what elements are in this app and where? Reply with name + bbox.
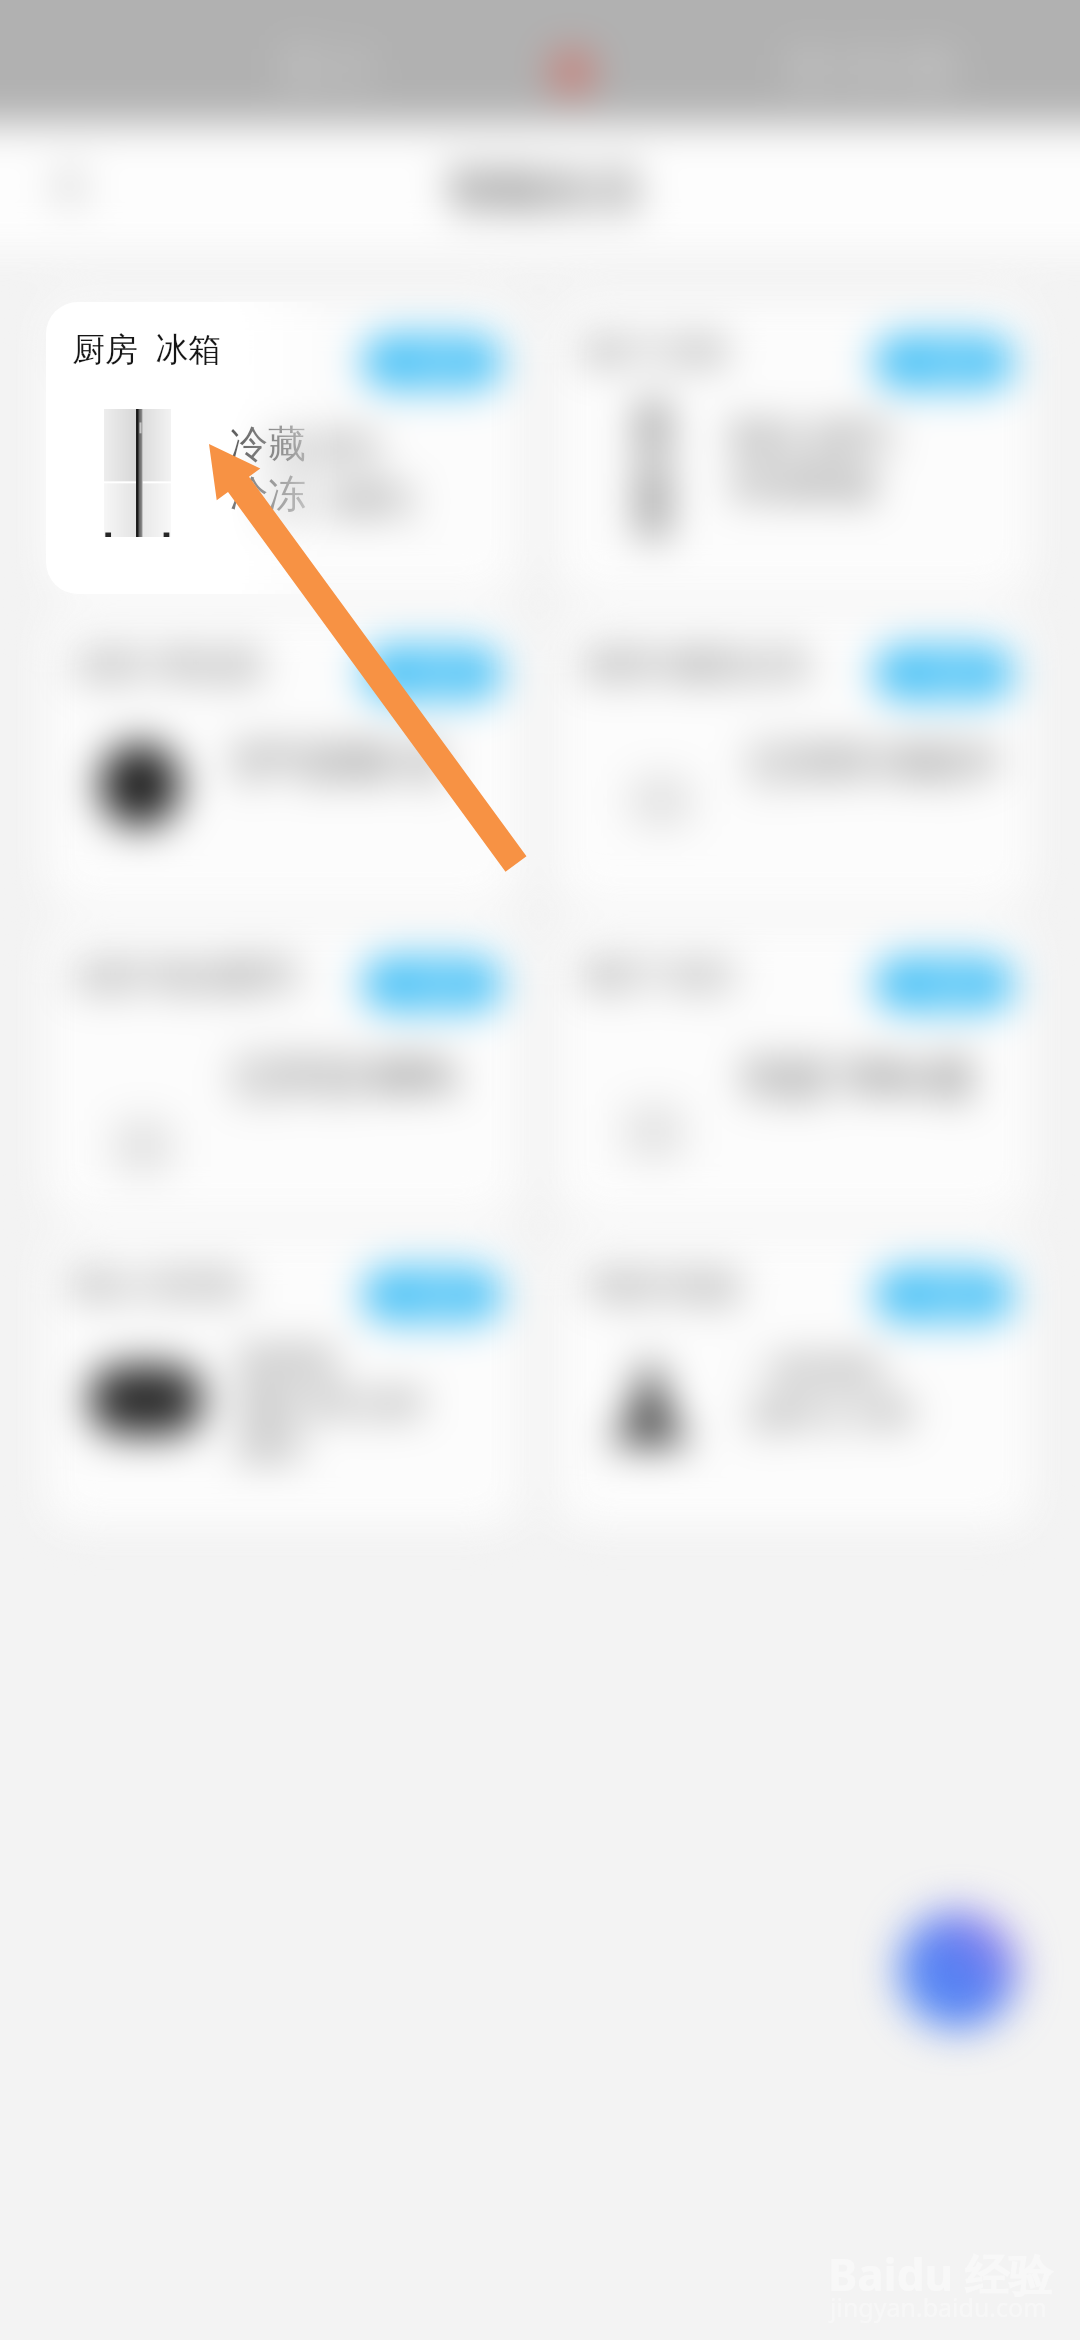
button[interactable]: 次卧 电动窗帘 <box>46 924 520 1216</box>
staticText: 阳台 洗衣机 <box>72 1261 246 1306</box>
button[interactable]: 客厅 吊灯 <box>558 924 1032 1216</box>
staticText: 冷冻 -18°C <box>232 474 414 526</box>
button[interactable]: 阳台 洗衣机 <box>46 1235 520 1527</box>
staticText: 已连接 <box>905 1279 983 1312</box>
staticText: 标准洗 <box>240 1341 336 1381</box>
staticText: 剩余 35 分钟 <box>240 1381 422 1425</box>
staticText: 已开启 80% <box>234 1046 455 1103</box>
staticText: 一档 摇头 <box>750 1347 887 1391</box>
button[interactable]: 已连接 <box>876 958 1012 1010</box>
button[interactable]: 厨房 冰箱 <box>46 302 346 594</box>
staticText: 厨房 冰箱 <box>72 328 213 373</box>
staticText: 冷冻 <box>230 470 306 518</box>
button[interactable]: 书房 风扇 <box>558 1235 1032 1527</box>
staticText: 客厅 吊灯 <box>584 950 738 999</box>
staticText: 已连接 <box>393 346 471 379</box>
staticText: 脱水 <box>240 1425 304 1465</box>
staticText: 定时 2 小时 <box>750 1391 913 1435</box>
staticText: 客厅 空调 <box>584 328 725 373</box>
button[interactable]: 厨房 烟机灶具 <box>558 613 1032 905</box>
staticText: 主卧 净化器 <box>72 639 262 688</box>
staticText: 亮度 70% 暖 <box>742 1048 974 1105</box>
staticText: 空气质量 优 <box>232 733 443 788</box>
staticText: 已连接 <box>393 968 471 1001</box>
staticText: 厨房 冰箱 <box>72 326 222 371</box>
staticText: 书房 风扇 <box>584 1261 738 1310</box>
staticText: 次卧 电动窗帘 <box>72 950 298 999</box>
staticText: 冷藏 5°C <box>232 422 380 474</box>
staticText: 冷藏 <box>230 420 306 468</box>
staticText: 已连接 <box>905 346 983 379</box>
button[interactable]: 厨房 冰箱 <box>46 302 520 594</box>
button[interactable]: 已连接 <box>876 647 1012 699</box>
staticText: 自动风速 <box>732 461 876 506</box>
button[interactable]: 已连接 <box>364 647 500 699</box>
button[interactable]: 已连接 <box>364 958 500 1010</box>
staticText: 已连接 <box>393 657 471 690</box>
button[interactable]: 已连接 <box>876 336 1012 388</box>
button[interactable]: Add device <box>899 1911 1017 2029</box>
button[interactable]: 主卧 净化器 <box>46 613 520 905</box>
staticText: 已关闭 待机中 <box>750 733 1001 788</box>
staticText: 已连接 <box>905 968 983 1001</box>
button[interactable]: 已连接 <box>364 1269 500 1321</box>
staticText: 已连接 <box>393 1279 471 1312</box>
staticText: 智能生活 <box>448 160 640 220</box>
button[interactable]: 已连接 <box>876 1269 1012 1321</box>
staticText: 制冷 26°C <box>732 412 893 461</box>
button[interactable]: 已连接 <box>364 336 500 388</box>
staticText: 已连接 <box>905 657 983 690</box>
button[interactable]: 客厅 空调 <box>558 302 1032 594</box>
staticText: 厨房 烟机灶具 <box>584 639 810 688</box>
